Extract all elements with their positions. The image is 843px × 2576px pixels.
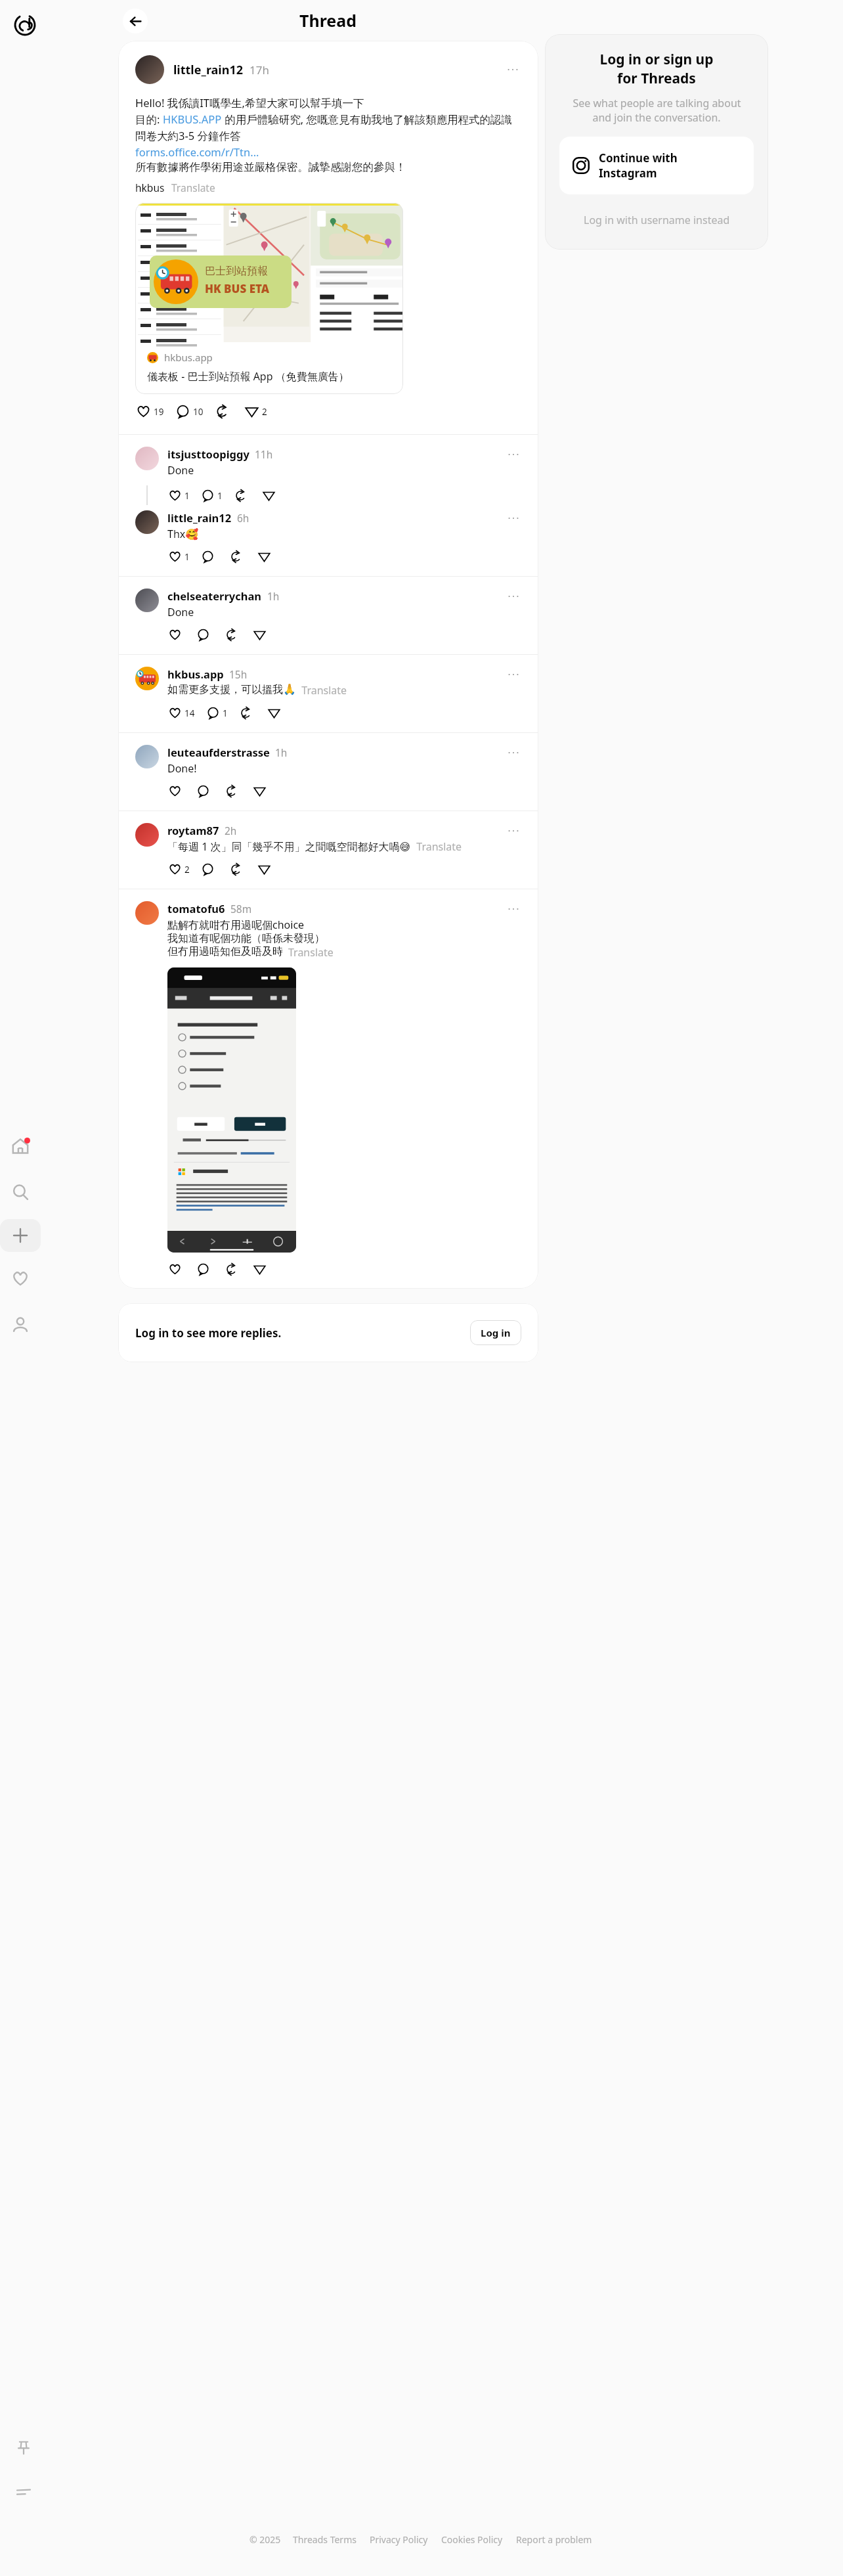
button[interactable]: Create xyxy=(0,1219,41,1252)
button[interactable]: Profile picture xyxy=(118,811,538,889)
button[interactable]: Share xyxy=(244,403,269,420)
staticText: 點解冇就咁冇用過呢個choice xyxy=(167,918,305,932)
button[interactable]: Profile picture xyxy=(135,588,159,612)
staticText: Threads Terms xyxy=(293,2533,357,2546)
staticText: roytam87 xyxy=(167,823,219,837)
button[interactable]: Profile picture xyxy=(135,901,159,925)
button[interactable]: Repost xyxy=(224,1262,239,1277)
button[interactable]: Like xyxy=(167,862,191,877)
staticText: 的用戶體驗研究, 您嘅意見有助我地了解該類應用程式的認識 xyxy=(222,112,513,127)
button[interactable]: Log in to see more replies. xyxy=(118,1303,538,1362)
button[interactable]: Threads home xyxy=(9,9,41,41)
staticText: Done! xyxy=(167,761,197,776)
button[interactable]: Continue with xyxy=(559,137,754,194)
staticText: Cookies Policy xyxy=(441,2533,503,2546)
button[interactable]: Profile picture xyxy=(135,745,159,768)
staticText: 目的: xyxy=(135,112,163,127)
button[interactable]: Like xyxy=(167,784,183,799)
button[interactable]: Like xyxy=(135,403,165,420)
button[interactable]: Repost xyxy=(224,784,239,799)
staticText: 17h xyxy=(249,62,269,78)
button[interactable]: Pinned xyxy=(6,2430,41,2466)
button[interactable]: Share xyxy=(252,784,267,799)
button[interactable]: Like xyxy=(167,627,183,642)
button[interactable]: Repost xyxy=(238,705,253,721)
staticText: Log in or sign up xyxy=(599,50,714,69)
button[interactable]: Activity xyxy=(0,1262,41,1295)
button[interactable]: Repost xyxy=(228,549,244,564)
button[interactable]: More options xyxy=(506,667,521,682)
button[interactable]: More options xyxy=(506,901,521,917)
staticText: 2 xyxy=(262,406,267,418)
button[interactable]: Comment xyxy=(175,403,205,420)
button[interactable]: Repost xyxy=(224,627,239,642)
staticText: chelseaterrychan xyxy=(167,588,262,603)
button[interactable]: Share xyxy=(267,705,282,721)
button[interactable]: Share xyxy=(252,627,267,642)
button[interactable]: More options xyxy=(504,61,521,78)
button[interactable]: Profile picture xyxy=(135,447,159,470)
button[interactable]: Profile picture xyxy=(118,577,538,654)
button[interactable]: Back xyxy=(123,9,148,33)
staticText: 但冇用過唔知佢及唔及時 xyxy=(167,945,283,958)
staticText: 14 xyxy=(184,707,195,719)
staticText: Log in to see more replies. xyxy=(135,1325,282,1341)
button[interactable]: hkbus.app profile picture xyxy=(135,667,159,690)
button[interactable]: Like xyxy=(167,549,191,564)
button[interactable]: More options xyxy=(506,510,521,526)
button[interactable]: Comment xyxy=(205,705,229,721)
staticText: Log in with username instead xyxy=(584,213,730,227)
button[interactable]: Log in with username instead xyxy=(580,209,734,231)
button[interactable]: More options xyxy=(506,447,521,462)
button[interactable]: Comment xyxy=(196,784,211,799)
button[interactable]: Repost xyxy=(228,862,244,877)
button[interactable]: Comment xyxy=(196,1262,211,1277)
staticText: Report a problem xyxy=(516,2533,592,2546)
staticText: Translate xyxy=(411,839,462,854)
button[interactable]: hkbus.app profile picture xyxy=(118,655,538,732)
button[interactable]: Threads Terms xyxy=(292,2532,358,2547)
button[interactable]: More menu xyxy=(6,2475,41,2510)
button[interactable]: Profile picture xyxy=(135,823,159,847)
button[interactable]: Privacy Policy xyxy=(368,2532,429,2547)
button[interactable]: 巴士到站預報 xyxy=(135,203,403,394)
button[interactable]: Like xyxy=(167,488,191,503)
button[interactable]: Report a problem xyxy=(515,2532,594,2547)
button[interactable]: Repost xyxy=(233,488,248,503)
button[interactable]: Like xyxy=(167,705,196,721)
button[interactable]: Share xyxy=(261,488,276,503)
button[interactable]: Cookies Policy xyxy=(440,2532,504,2547)
button[interactable]: Share xyxy=(252,1262,267,1277)
button[interactable]: Share xyxy=(257,862,272,877)
button[interactable]: Comment xyxy=(200,488,224,503)
staticText: Translate xyxy=(171,181,215,194)
button[interactable]: More options xyxy=(506,823,521,839)
staticText: 1 xyxy=(184,490,190,502)
button[interactable]: Screenshot of survey form xyxy=(167,967,296,1253)
button[interactable]: Profile picture xyxy=(135,55,164,84)
staticText: 1h xyxy=(267,589,280,603)
button[interactable]: More options xyxy=(506,588,521,604)
button[interactable]: Profile picture xyxy=(135,510,159,534)
button[interactable]: Comment xyxy=(196,627,211,642)
button[interactable]: Like xyxy=(167,1262,183,1277)
button[interactable]: Profile xyxy=(0,1308,41,1341)
button[interactable]: Profile picture xyxy=(118,733,538,811)
staticText: 我知道有呢個功能（唔係未發現） xyxy=(167,932,325,945)
staticText: 「每週 1 次」同「幾乎不用」之間嘅空間都好大喎😅 xyxy=(167,839,411,854)
button[interactable]: Home xyxy=(0,1130,41,1163)
button[interactable]: Comment xyxy=(200,549,215,564)
staticText: 15h xyxy=(229,667,248,681)
button[interactable]: Repost xyxy=(214,403,230,420)
button[interactable]: Log in xyxy=(470,1320,521,1345)
staticText: for Threads xyxy=(617,69,696,88)
staticText: 1 xyxy=(217,490,223,502)
button[interactable]: More options xyxy=(506,745,521,761)
button[interactable]: Comment xyxy=(200,862,215,877)
staticText: Hello! 我係讀IT嘅學生,希望大家可以幫手填一下 xyxy=(135,95,364,110)
staticText: 問卷大約3-5 分鐘作答 xyxy=(135,128,241,143)
staticText: Translate xyxy=(296,683,347,698)
staticText: hkbus.app xyxy=(164,351,213,364)
button[interactable]: Share xyxy=(257,549,272,564)
button[interactable]: Search xyxy=(0,1176,41,1209)
